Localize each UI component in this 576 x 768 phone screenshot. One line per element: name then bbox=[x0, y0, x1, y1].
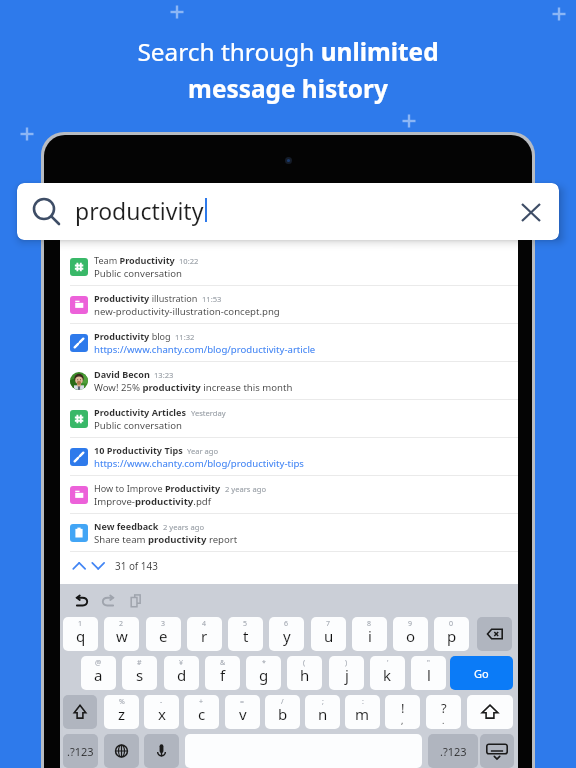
button[interactable]: 5 bbox=[228, 617, 263, 651]
button[interactable]: 3 bbox=[146, 617, 181, 651]
button[interactable]: 7 bbox=[311, 617, 346, 651]
button[interactable]: Previous result bbox=[72, 558, 90, 576]
staticText: ! bbox=[401, 699, 405, 717]
button[interactable]: % bbox=[104, 695, 139, 729]
staticText: r bbox=[201, 626, 208, 646]
staticText: w bbox=[116, 626, 128, 646]
button[interactable]: Search bbox=[17, 183, 559, 240]
staticText: u bbox=[324, 626, 334, 646]
button[interactable]: : bbox=[345, 695, 380, 729]
button[interactable]: * bbox=[246, 656, 281, 690]
staticText: o bbox=[406, 626, 416, 646]
staticText: * bbox=[262, 658, 266, 668]
button[interactable]: 4 bbox=[187, 617, 222, 651]
staticText: / bbox=[281, 697, 284, 707]
button[interactable]: Shift bbox=[467, 695, 513, 729]
button[interactable]: ? bbox=[426, 695, 461, 729]
button[interactable]: Go bbox=[450, 656, 513, 690]
button[interactable]: 2 bbox=[104, 617, 139, 651]
button[interactable]: Productivity blog bbox=[60, 324, 518, 362]
staticText: 1 bbox=[78, 619, 83, 629]
staticText: z bbox=[118, 704, 126, 724]
button[interactable]: 9 bbox=[393, 617, 428, 651]
button[interactable]: 0 bbox=[434, 617, 469, 651]
staticText: Go bbox=[474, 666, 489, 681]
button[interactable]: 8 bbox=[352, 617, 387, 651]
staticText: .?123 bbox=[67, 744, 94, 759]
staticText: f bbox=[220, 665, 226, 685]
staticText: j bbox=[345, 665, 349, 685]
staticText: 7 bbox=[326, 619, 331, 629]
button[interactable]: Backspace bbox=[477, 617, 512, 651]
staticText: : bbox=[362, 697, 364, 707]
button[interactable]: Clear search bbox=[521, 203, 541, 223]
button[interactable]: + bbox=[184, 695, 219, 729]
staticText: Productivity Articles bbox=[94, 406, 187, 418]
button[interactable]: New feedback bbox=[60, 514, 518, 552]
button[interactable]: @ bbox=[81, 656, 116, 690]
staticText: 8 bbox=[367, 619, 372, 629]
button[interactable]: ( bbox=[287, 656, 322, 690]
button[interactable]: Team Productivity bbox=[60, 248, 518, 286]
button[interactable]: Change language bbox=[104, 734, 139, 768]
staticText: m bbox=[355, 704, 370, 724]
button[interactable]: Hide keyboard bbox=[480, 734, 514, 768]
button[interactable]: .?123 bbox=[63, 734, 98, 768]
staticText: - bbox=[160, 697, 163, 707]
staticText: David Becon bbox=[94, 368, 150, 380]
staticText: # bbox=[137, 658, 142, 668]
staticText: productivity bbox=[75, 195, 204, 226]
button[interactable]: # bbox=[122, 656, 157, 690]
staticText: l bbox=[427, 665, 431, 685]
staticText: 10:22 bbox=[179, 256, 199, 266]
button[interactable]: ! bbox=[385, 695, 420, 729]
staticText: 11:53 bbox=[202, 294, 222, 304]
staticText: https://www.chanty.com/blog/productivity… bbox=[94, 457, 304, 470]
staticText: @ bbox=[95, 658, 102, 668]
staticText: a bbox=[94, 665, 103, 685]
button[interactable]: Shift bbox=[63, 695, 97, 729]
staticText: b bbox=[278, 704, 288, 724]
button[interactable]: / bbox=[265, 695, 300, 729]
button[interactable]: ) bbox=[329, 656, 364, 690]
staticText: Search through unlimited message history bbox=[0, 35, 576, 105]
staticText: 11:32 bbox=[175, 332, 195, 342]
button[interactable]: = bbox=[225, 695, 260, 729]
button[interactable]: Undo bbox=[74, 593, 90, 609]
staticText: 13:23 bbox=[154, 370, 174, 380]
staticText: n bbox=[318, 704, 328, 724]
staticText: 2 years ago bbox=[225, 484, 267, 494]
staticText: 0 bbox=[449, 619, 454, 629]
button[interactable]: ; bbox=[305, 695, 340, 729]
button[interactable]: Productivity illustration bbox=[60, 286, 518, 324]
staticText: New feedback bbox=[94, 520, 159, 532]
staticText: https://www.chanty.com/blog/productivity… bbox=[94, 343, 316, 356]
button[interactable]: 6 bbox=[269, 617, 304, 651]
button[interactable]: How to Improve Productivity bbox=[60, 476, 518, 514]
button[interactable]: ¥ bbox=[164, 656, 199, 690]
button[interactable]: - bbox=[144, 695, 179, 729]
button[interactable]: Productivity Articles bbox=[60, 400, 518, 438]
button[interactable]: 1 bbox=[63, 617, 98, 651]
staticText: Productivity blog bbox=[94, 330, 171, 342]
button[interactable]: Dictate bbox=[144, 734, 179, 768]
staticText: + bbox=[199, 697, 204, 707]
button[interactable]: Redo bbox=[100, 593, 116, 609]
staticText: Improve-productivity.pdf bbox=[94, 495, 211, 508]
button[interactable]: & bbox=[205, 656, 240, 690]
button[interactable]: David Becon bbox=[60, 362, 518, 400]
button[interactable]: Next result bbox=[91, 558, 109, 576]
staticText: Team Productivity bbox=[94, 254, 175, 266]
staticText: ' bbox=[387, 658, 389, 668]
staticText: 2 bbox=[119, 619, 124, 629]
button[interactable]: .?123 bbox=[428, 734, 478, 768]
button[interactable]: 10 Productivity Tips bbox=[60, 438, 518, 476]
staticText: c bbox=[198, 704, 206, 724]
button[interactable]: " bbox=[411, 656, 446, 690]
button[interactable]: ' bbox=[370, 656, 405, 690]
button[interactable]: Paste bbox=[128, 593, 144, 609]
staticText: h bbox=[300, 665, 310, 685]
staticText: d bbox=[177, 665, 187, 685]
staticText: Year ago bbox=[187, 446, 219, 456]
